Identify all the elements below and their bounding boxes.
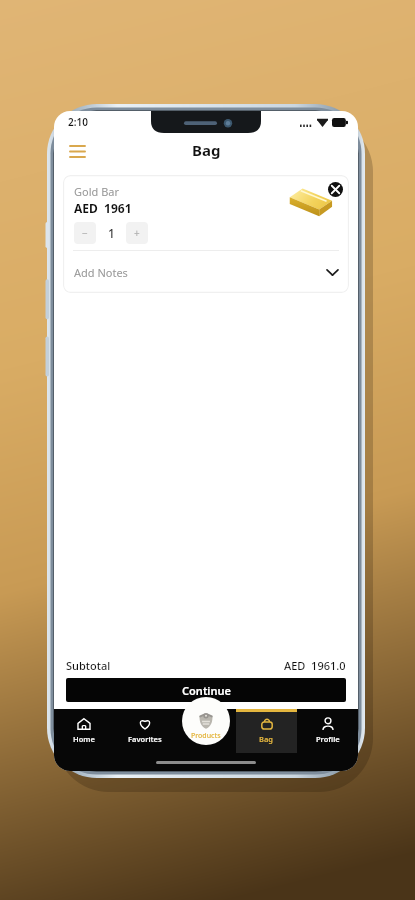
- staticText: 2:10: [68, 115, 88, 129]
- button[interactable]: Bag: [236, 709, 297, 753]
- button[interactable]: Decrease quantity: [74, 222, 96, 244]
- staticText: −: [82, 226, 88, 240]
- staticText: Gold Bar: [74, 184, 119, 199]
- staticText: Home: [73, 734, 95, 744]
- staticText: Profile: [316, 734, 340, 744]
- button[interactable]: Products: [182, 697, 230, 745]
- button[interactable]: Add Notes: [63, 251, 349, 293]
- staticText: Add Notes: [74, 265, 128, 280]
- button[interactable]: Increase quantity: [126, 222, 148, 244]
- button[interactable]: Home: [54, 709, 114, 753]
- staticText: Bag: [192, 140, 221, 160]
- staticText: AED 1961.0: [284, 658, 346, 673]
- staticText: Bag: [259, 734, 274, 744]
- button[interactable]: Menu: [62, 135, 92, 165]
- staticText: Subtotal: [66, 658, 111, 673]
- staticText: Products: [191, 731, 221, 741]
- button[interactable]: Continue: [66, 678, 346, 702]
- staticText: AED 1961: [74, 200, 132, 216]
- button[interactable]: Profile: [297, 709, 358, 753]
- staticText: Continue: [182, 683, 231, 698]
- staticText: +: [134, 226, 140, 240]
- button[interactable]: Favorites: [114, 709, 175, 753]
- staticText: 1: [108, 225, 115, 241]
- button[interactable]: Remove item: [323, 177, 347, 201]
- staticText: Favorites: [128, 734, 162, 744]
